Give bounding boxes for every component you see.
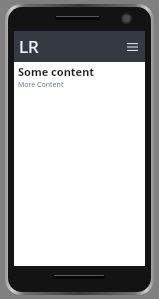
button[interactable]: Open navigation menu bbox=[123, 40, 141, 54]
button[interactable]: LR bbox=[18, 33, 40, 60]
staticText: Some content bbox=[18, 64, 95, 79]
staticText: More Content bbox=[18, 80, 64, 90]
staticText: LR bbox=[19, 35, 39, 58]
